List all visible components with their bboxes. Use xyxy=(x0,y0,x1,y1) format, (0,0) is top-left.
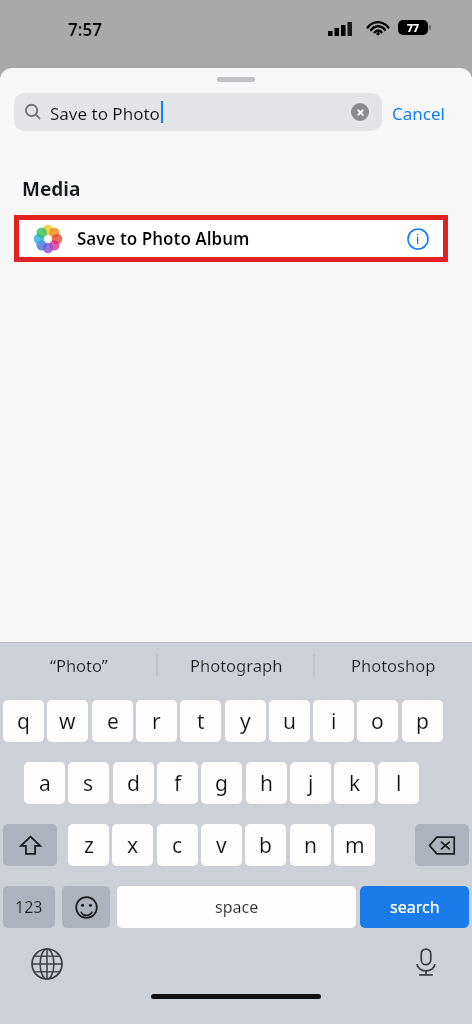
staticText: Save to Photo Album xyxy=(77,227,250,250)
button[interactable]: 123 xyxy=(3,886,55,928)
staticText: i xyxy=(416,231,420,247)
button[interactable]: p xyxy=(402,700,443,742)
staticText: “Photo” xyxy=(50,654,108,676)
button[interactable]: q xyxy=(3,700,44,742)
button[interactable]: n xyxy=(290,824,331,866)
button[interactable]: r xyxy=(136,700,177,742)
staticText: a xyxy=(39,769,51,798)
staticText: Photoshop xyxy=(351,654,436,676)
staticText: h xyxy=(260,769,273,798)
button[interactable]: s xyxy=(68,762,109,804)
staticText: 77 xyxy=(407,21,420,35)
button[interactable]: y xyxy=(225,700,266,742)
staticText: Save to Photo xyxy=(50,102,160,125)
staticText: l xyxy=(396,769,402,798)
staticText: Photograph xyxy=(190,654,283,676)
button[interactable]: Emoji xyxy=(62,886,110,928)
button[interactable]: Save to Photo xyxy=(14,93,382,131)
staticText: d xyxy=(127,769,140,798)
button[interactable]: search xyxy=(360,886,469,928)
button[interactable]: v xyxy=(201,824,242,866)
button[interactable]: space xyxy=(117,886,356,928)
button[interactable]: Dictate xyxy=(409,945,443,979)
staticText: m xyxy=(345,831,365,860)
staticText: z xyxy=(84,831,94,860)
staticText: w xyxy=(59,707,76,736)
button[interactable]: l xyxy=(378,762,419,804)
button[interactable]: g xyxy=(201,762,242,804)
button[interactable]: b xyxy=(245,824,286,866)
staticText: v xyxy=(216,831,227,860)
button[interactable]: u xyxy=(269,700,310,742)
button[interactable]: Cancel xyxy=(392,102,445,125)
button[interactable]: j xyxy=(290,762,331,804)
button[interactable]: Photoshop xyxy=(315,642,472,688)
button[interactable]: i xyxy=(313,700,354,742)
button[interactable]: Backspace xyxy=(415,824,469,866)
button[interactable]: Save to Photo Album xyxy=(19,220,443,257)
staticText: f xyxy=(174,769,182,798)
staticText: x xyxy=(127,831,139,860)
button[interactable]: e xyxy=(92,700,133,742)
button[interactable]: Shift xyxy=(3,824,57,866)
staticText: space xyxy=(215,896,259,918)
button[interactable]: f xyxy=(157,762,198,804)
staticText: 123 xyxy=(15,896,43,918)
staticText: search xyxy=(390,896,440,918)
button[interactable]: Clear text xyxy=(351,103,369,121)
staticText: t xyxy=(197,707,205,736)
button[interactable]: d xyxy=(113,762,154,804)
button[interactable]: Photograph xyxy=(158,642,315,688)
button[interactable]: k xyxy=(334,762,375,804)
staticText: r xyxy=(152,707,161,736)
button[interactable]: w xyxy=(47,700,88,742)
staticText: n xyxy=(304,831,317,860)
button[interactable]: a xyxy=(24,762,65,804)
button[interactable]: Change keyboard language xyxy=(30,947,64,981)
staticText: s xyxy=(83,769,94,798)
button[interactable]: h xyxy=(246,762,287,804)
button[interactable]: c xyxy=(157,824,198,866)
staticText: o xyxy=(371,707,384,736)
button[interactable]: o xyxy=(357,700,398,742)
staticText: p xyxy=(416,707,429,736)
staticText: g xyxy=(215,769,228,798)
button[interactable]: t xyxy=(180,700,221,742)
staticText: q xyxy=(17,707,30,736)
button[interactable]: z xyxy=(68,824,109,866)
staticText: k xyxy=(349,769,361,798)
staticText: j xyxy=(308,769,314,798)
button[interactable]: x xyxy=(112,824,153,866)
staticText: e xyxy=(107,707,119,736)
button[interactable]: m xyxy=(334,824,375,866)
button[interactable]: “Photo” xyxy=(0,642,158,688)
staticText: b xyxy=(259,831,272,860)
staticText: y xyxy=(240,707,251,736)
staticText: Cancel xyxy=(392,102,445,125)
staticText: 7:57 xyxy=(68,18,102,41)
staticText: Media xyxy=(22,176,81,202)
staticText: i xyxy=(331,707,337,736)
button[interactable]: More info xyxy=(407,228,429,250)
staticText: u xyxy=(283,707,296,736)
staticText: c xyxy=(172,831,183,860)
